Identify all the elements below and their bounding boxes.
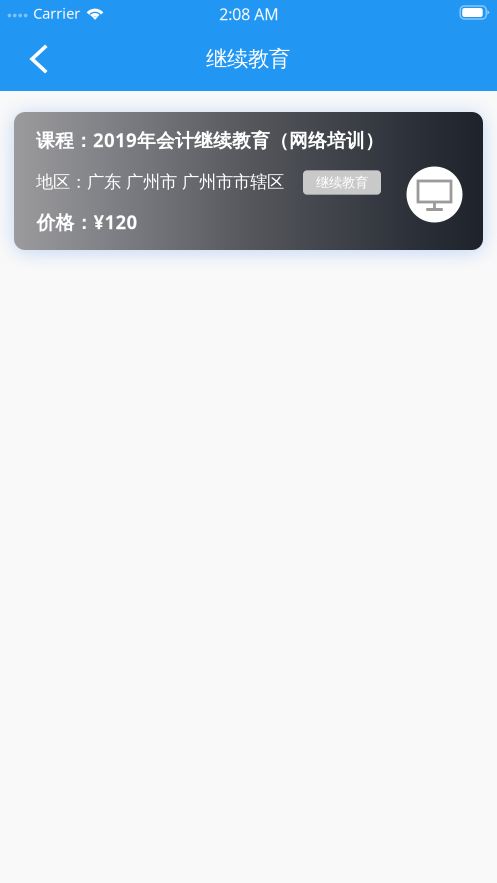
button[interactable]: Back [15,33,63,85]
staticText: 继续教育 [316,174,368,191]
staticText: 地区：广东 广州市 广州市市辖区 [36,171,284,193]
staticText: 价格：¥120 [36,210,137,234]
staticText: 课程：2019年会计继续教育（网络培训） [36,128,384,152]
staticText: 2:08 AM [219,3,279,25]
staticText: Carrier [33,3,80,23]
staticText: 继续教育 [206,46,290,72]
